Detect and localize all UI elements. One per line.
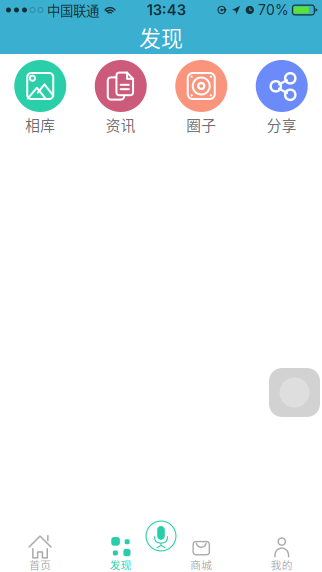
button[interactable]: 相库 <box>0 60 80 135</box>
button[interactable]: Voice search <box>144 519 177 552</box>
staticText: 圈子 <box>186 114 216 135</box>
staticText: 商城 <box>190 557 212 572</box>
staticText: 发现 <box>139 21 183 53</box>
staticText: 13:43 <box>147 1 186 19</box>
staticText: 资讯 <box>106 114 136 135</box>
staticText: 中国联通 <box>47 0 99 20</box>
button[interactable]: 商城 <box>161 525 241 572</box>
staticText: 首页 <box>29 557 51 572</box>
button[interactable]: 首页 <box>0 525 80 572</box>
button[interactable]: 圈子 <box>161 60 241 135</box>
button[interactable]: 分享 <box>241 60 322 135</box>
button[interactable]: 发现 <box>80 525 161 572</box>
staticText: 分享 <box>267 114 297 135</box>
staticText: 发现 <box>110 557 132 572</box>
staticText: 70% <box>258 1 289 18</box>
button[interactable]: 资讯 <box>80 60 161 135</box>
staticText: 我的 <box>271 557 293 572</box>
button[interactable]: 我的 <box>241 525 322 572</box>
staticText: 相库 <box>25 114 55 135</box>
